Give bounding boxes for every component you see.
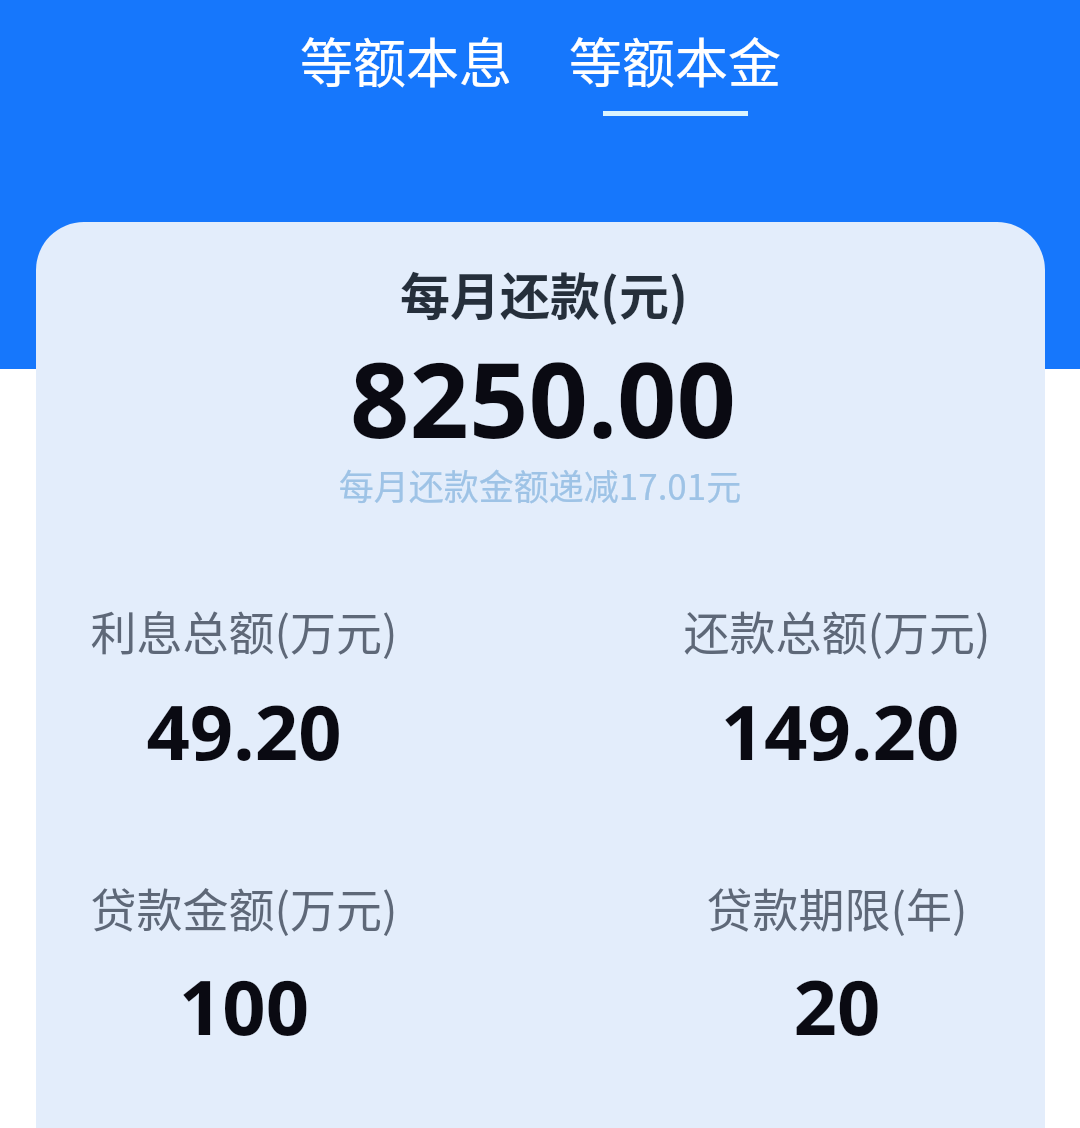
staticText: 每月还款(元) (4, 257, 1080, 329)
button[interactable]: 等额本息 (286, 10, 526, 128)
button[interactable] (593, 850, 1080, 1044)
button[interactable]: 等额本金 (555, 10, 795, 128)
button[interactable] (593, 573, 1080, 769)
staticText: 每月还款金额递减17.01元 (0, 459, 1080, 510)
staticText: 贷款期限(年) (593, 874, 1080, 941)
staticText: 等额本金 (569, 22, 781, 99)
staticText: 利息总额(万元) (0, 597, 488, 664)
staticText: 20 (593, 954, 1080, 1058)
staticText: 贷款金额(万元) (0, 874, 488, 941)
staticText: 100 (0, 954, 488, 1058)
staticText: 还款总额(万元) (593, 597, 1080, 664)
staticText: 49.20 (0, 679, 488, 783)
staticText: 8250.00 (3, 327, 1080, 469)
button[interactable] (0, 850, 488, 1044)
staticText: 等额本息 (300, 22, 512, 99)
staticText: 149.20 (596, 679, 1080, 783)
button[interactable] (0, 573, 488, 769)
